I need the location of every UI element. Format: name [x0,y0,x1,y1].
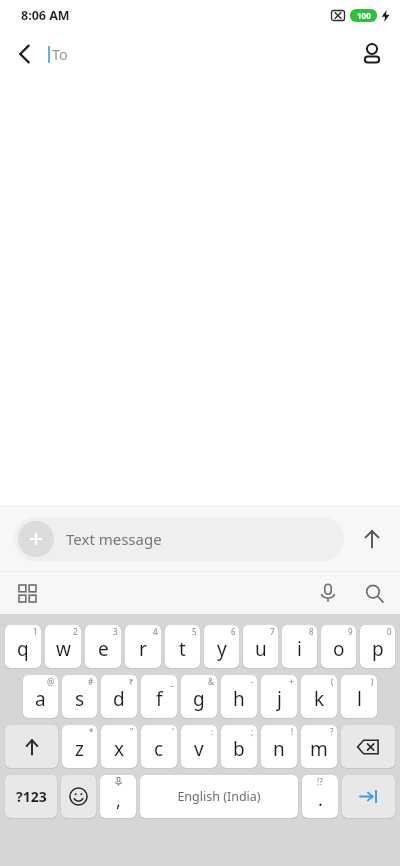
staticText: !? [317,776,323,787]
staticText: + [289,676,294,687]
staticText: ) [371,676,374,687]
staticText: ( [331,676,334,687]
staticText: y [217,636,227,662]
staticText: 8:06 AM [21,7,70,24]
staticText: h [233,686,245,712]
button[interactable]: Shift [5,725,58,768]
staticText: Text message [66,529,162,549]
button[interactable]: Voice input [304,572,352,614]
button[interactable]: Backspace [341,725,395,768]
button[interactable]: 8 [282,625,317,668]
button[interactable]: Next field [342,775,395,818]
staticText: c [154,736,164,762]
staticText: e [98,636,109,662]
button[interactable]: - [221,675,257,718]
button[interactable]: ?123 [5,775,57,818]
staticText: x [114,736,125,762]
button[interactable]: Search [352,572,396,614]
button[interactable]: " [101,725,137,768]
button[interactable]: # [62,675,97,718]
staticText: o [333,636,345,662]
button[interactable]: ! [261,725,297,768]
staticText: - [251,676,254,687]
button[interactable]: ; [221,725,257,768]
staticText: @ [47,676,55,687]
button[interactable]: Contacts [344,30,400,78]
button[interactable]: + [261,675,297,718]
staticText: u [255,636,267,662]
staticText: 4 [153,626,158,637]
button[interactable]: Add attachment [14,517,344,561]
button[interactable]: Apps [4,572,50,614]
staticText: m [310,736,328,762]
button[interactable]: * [62,725,97,768]
staticText: b [233,736,245,762]
button[interactable]: 5 [165,625,200,668]
button[interactable]: 7 [243,625,278,668]
staticText: k [314,686,325,712]
staticText: z [75,736,84,762]
staticText: . [318,787,323,812]
staticText: t [179,636,186,662]
staticText: w [56,636,71,662]
button[interactable]: 3 [85,625,121,668]
staticText: d [113,686,125,712]
button[interactable]: @ [23,675,58,718]
staticText: # [88,676,94,687]
staticText: , [116,788,121,813]
staticText: 100 [357,10,371,21]
button[interactable]: 2 [45,625,81,668]
button[interactable]: 4 [125,625,161,668]
button[interactable]: & [181,675,217,718]
button[interactable]: Back [0,30,48,78]
staticText: ; [251,726,254,737]
staticText: ? [330,726,334,737]
staticText: l [357,686,362,712]
staticText: s [75,686,85,712]
staticText: ₹ [129,676,134,687]
staticText: ! [291,726,294,737]
staticText: i [297,636,302,662]
button[interactable]: 9 [321,625,356,668]
staticText: f [156,686,163,712]
button[interactable]: ? [301,725,337,768]
button[interactable]: : [181,725,217,768]
staticText: ' [172,726,174,737]
button[interactable]: ' [141,725,177,768]
staticText: j [277,686,282,712]
button[interactable]: Send [344,511,400,567]
button[interactable]: 0 [360,625,395,668]
button[interactable]: 6 [204,625,239,668]
staticText: 5 [192,626,197,637]
staticText: " [130,726,134,737]
staticText: To [52,44,68,64]
staticText: English (India) [177,788,261,805]
staticText: p [372,636,384,662]
staticText: g [193,686,205,712]
staticText: 9 [348,626,353,637]
staticText: 0 [387,626,392,637]
button[interactable]: Emoji [61,775,96,818]
button[interactable]: To [48,30,344,78]
button[interactable]: Add attachment [18,521,54,557]
button[interactable]: _ [141,675,177,718]
staticText: 7 [270,626,275,637]
staticText: v [194,736,204,762]
button[interactable]: ) [341,675,377,718]
button[interactable]: 1 [5,625,41,668]
button[interactable]: ( [301,675,337,718]
staticText: q [17,636,29,662]
staticText: _ [170,676,174,687]
button[interactable]: , [100,775,136,818]
staticText: r [139,636,147,662]
staticText: a [35,686,46,712]
staticText: : [211,726,214,737]
staticText: 3 [113,626,118,637]
staticText: * [89,726,94,737]
button[interactable]: !? [302,775,338,818]
button[interactable]: ₹ [101,675,137,718]
button[interactable]: English (India) [140,775,298,818]
staticText: & [208,676,214,687]
staticText: 8 [309,626,314,637]
staticText: 6 [231,626,236,637]
